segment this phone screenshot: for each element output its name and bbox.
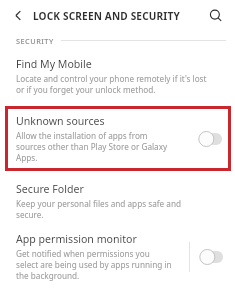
staticText: Secure Folder bbox=[16, 182, 84, 196]
staticText: Keep your personal files and apps safe a… bbox=[16, 198, 181, 209]
staticText: secure. bbox=[16, 209, 44, 220]
staticText: select are being used by apps running in bbox=[16, 259, 172, 270]
button[interactable]: Unknown sources bbox=[5, 106, 231, 171]
staticText: Find My Mobile bbox=[16, 57, 92, 71]
staticText: LOCK SCREEN AND SECURITY bbox=[33, 9, 180, 23]
button[interactable]: Find My Mobile bbox=[0, 57, 235, 95]
staticText: Locate and control your phone remotely i… bbox=[16, 73, 207, 84]
staticText: sources other than Play Store or Galaxy bbox=[16, 141, 168, 152]
button[interactable]: Search bbox=[205, 5, 227, 27]
staticText: Get notified when permissions you bbox=[16, 248, 150, 259]
staticText: SECURITY bbox=[16, 36, 54, 46]
staticText: Apps. bbox=[16, 152, 38, 163]
staticText: Unknown sources bbox=[16, 114, 105, 128]
button[interactable]: App permission monitor toggle bbox=[199, 249, 227, 265]
button[interactable]: Unknown sources toggle bbox=[198, 131, 226, 147]
staticText: Allow the installation of apps from bbox=[16, 130, 148, 141]
button[interactable]: Back bbox=[8, 5, 29, 26]
staticText: App permission monitor bbox=[16, 232, 137, 246]
staticText: the background. bbox=[16, 270, 80, 281]
staticText: or if you forget your unlock method. bbox=[16, 84, 156, 95]
button[interactable]: Secure Folder bbox=[0, 182, 235, 220]
button[interactable]: App permission monitor bbox=[0, 232, 235, 281]
